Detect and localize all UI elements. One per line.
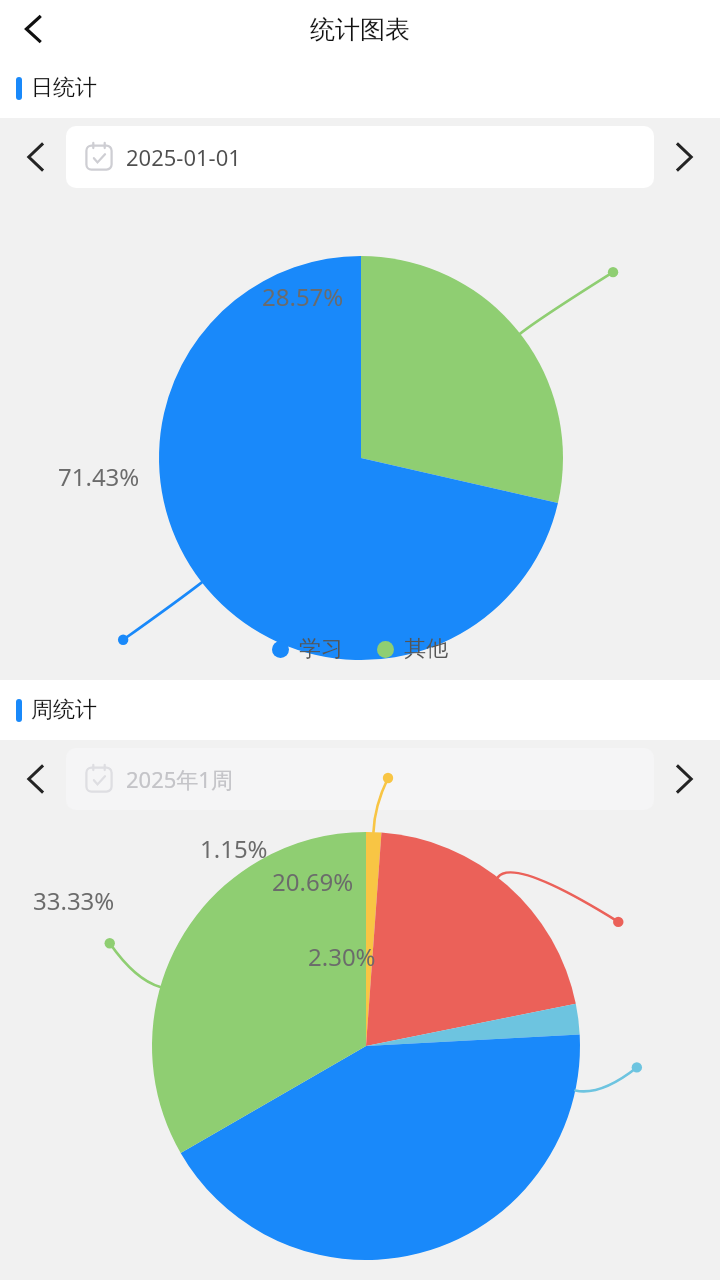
button[interactable]: Back — [4, 0, 62, 58]
staticText: 28.57% — [262, 280, 344, 313]
staticText: 2.30% — [308, 940, 376, 973]
staticText: 其他 — [404, 635, 448, 663]
button[interactable]: 2025-01-01 — [66, 126, 654, 188]
button[interactable]: Previous — [6, 749, 66, 809]
staticText: 33.33% — [33, 884, 115, 917]
button[interactable]: Next — [654, 127, 714, 187]
staticText: 2025年1周 — [126, 764, 233, 794]
staticText: 2025-01-01 — [126, 142, 241, 172]
button[interactable]: 其他 — [377, 635, 448, 663]
button[interactable]: Previous — [6, 127, 66, 187]
staticText: 71.43% — [58, 460, 140, 493]
button[interactable]: 学习 — [272, 635, 343, 663]
button[interactable]: Next — [654, 749, 714, 809]
staticText: 日统计 — [31, 74, 97, 102]
staticText: 周统计 — [31, 696, 97, 724]
staticText: 20.69% — [272, 865, 354, 898]
staticText: 学习 — [299, 635, 343, 663]
button[interactable]: 2025年1周 — [66, 748, 654, 810]
staticText: 统计图表 — [310, 14, 410, 45]
staticText: 1.15% — [200, 832, 268, 865]
